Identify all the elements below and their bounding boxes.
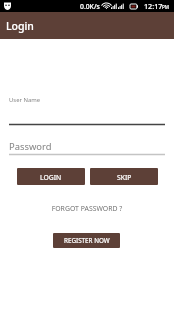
button[interactable]: SKIP: [90, 168, 158, 185]
staticText: SKIP: [117, 173, 132, 182]
staticText: REGISTER NOW: [64, 236, 110, 245]
button[interactable]: LOGIN: [17, 168, 85, 185]
staticText: Login: [6, 19, 34, 33]
button[interactable]: FORGOT PASSWORD ?: [0, 204, 174, 213]
staticText: LOGIN: [40, 173, 62, 182]
staticText: User Name: [9, 96, 41, 104]
staticText: 0.0K/s: [80, 2, 100, 11]
staticText: FORGOT PASSWORD ?: [0, 204, 174, 213]
staticText: Password: [9, 140, 52, 153]
staticText: PM: [162, 4, 170, 10]
button[interactable]: REGISTER NOW: [53, 233, 120, 248]
staticText: 12:17: [144, 1, 163, 11]
